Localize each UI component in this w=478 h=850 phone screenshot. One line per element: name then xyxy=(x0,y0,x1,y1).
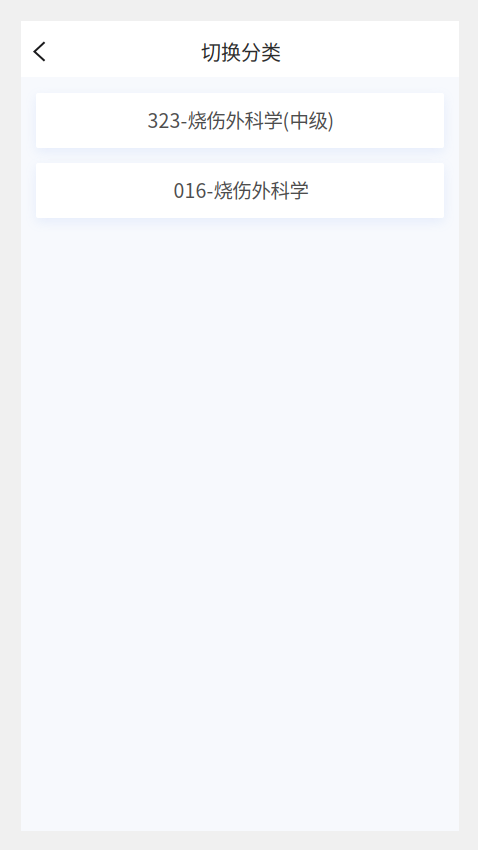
button[interactable]: 016-烧伤外科学 xyxy=(36,163,444,218)
staticText: 切换分类 xyxy=(201,37,281,66)
staticText: 016-烧伤外科学 xyxy=(173,175,308,204)
button[interactable]: Back xyxy=(21,29,58,73)
button[interactable]: 323-烧伤外科学(中级) xyxy=(36,93,444,148)
staticText: 323-烧伤外科学(中级) xyxy=(147,105,334,134)
